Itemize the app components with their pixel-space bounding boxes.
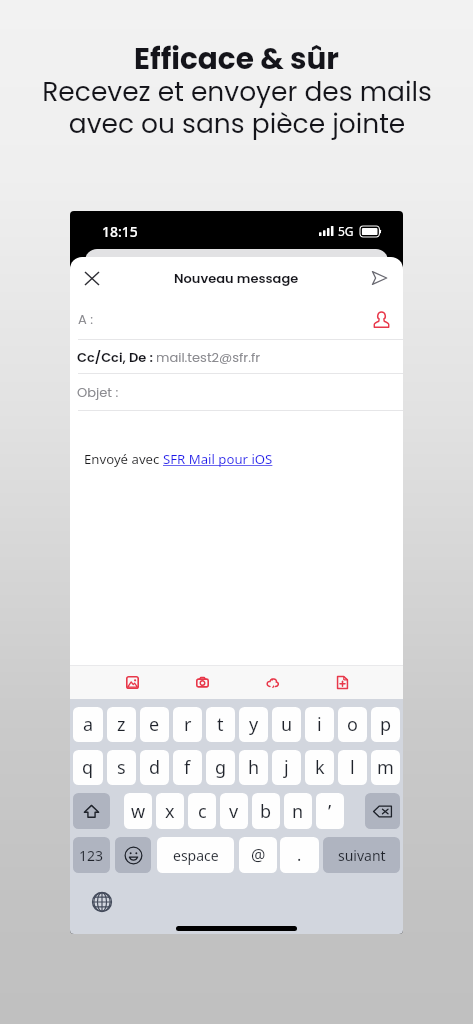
button[interactable]: e xyxy=(140,707,169,742)
staticText: a xyxy=(83,712,94,737)
button[interactable]: x xyxy=(156,793,184,829)
button[interactable]: espace xyxy=(157,837,234,873)
button[interactable]: i xyxy=(305,707,334,742)
staticText: o xyxy=(347,712,358,737)
button[interactable]: w xyxy=(124,793,152,829)
staticText: suivant xyxy=(338,846,386,865)
button[interactable]: Fichier xyxy=(307,666,377,699)
staticText: 123 xyxy=(79,846,104,865)
staticText: m xyxy=(377,755,394,780)
button[interactable]: q xyxy=(73,750,103,785)
staticText: z xyxy=(117,712,126,737)
staticText: u xyxy=(281,712,293,737)
staticText: 5G xyxy=(338,223,354,239)
staticText: x xyxy=(165,799,175,824)
staticText: Envoyé avec xyxy=(84,450,163,468)
staticText: 18:15 xyxy=(102,222,138,241)
button[interactable]: SFR Mail pour iOS xyxy=(163,450,273,468)
staticText: Nouveau message xyxy=(174,269,299,287)
button[interactable]: b xyxy=(252,793,280,829)
button[interactable]: s xyxy=(107,750,136,785)
button[interactable]: u xyxy=(272,707,301,742)
staticText: mail.test2@sfr.fr xyxy=(156,348,261,366)
staticText: Efficace & sûr xyxy=(134,38,339,79)
button[interactable]: a xyxy=(73,707,103,742)
button[interactable]: Emoji xyxy=(115,837,151,873)
button[interactable]: f xyxy=(173,750,202,785)
staticText: . xyxy=(297,844,302,866)
staticText: j xyxy=(284,755,289,780)
button[interactable]: m xyxy=(371,750,400,785)
button[interactable]: d xyxy=(140,750,169,785)
button[interactable]: t xyxy=(206,707,235,742)
staticText: i xyxy=(317,712,322,737)
button[interactable]: j xyxy=(272,750,301,785)
button[interactable]: z xyxy=(107,707,136,742)
button[interactable]: c xyxy=(188,793,216,829)
button[interactable]: ’ xyxy=(316,793,344,829)
staticText: p xyxy=(380,712,392,737)
staticText: h xyxy=(248,755,260,780)
button[interactable]: l xyxy=(338,750,367,785)
staticText: e xyxy=(149,712,160,737)
staticText: r xyxy=(184,712,192,737)
button[interactable]: Cloud xyxy=(237,666,307,699)
button[interactable]: Supprimer xyxy=(365,793,400,829)
button[interactable]: Majuscule xyxy=(73,793,110,829)
staticText: k xyxy=(315,755,325,780)
button[interactable]: r xyxy=(173,707,202,742)
staticText: b xyxy=(260,799,272,824)
staticText: g xyxy=(215,755,227,780)
staticText: espace xyxy=(173,846,219,865)
staticText: Objet : xyxy=(77,383,119,401)
button[interactable]: g xyxy=(206,750,235,785)
button[interactable]: k xyxy=(305,750,334,785)
staticText: d xyxy=(149,755,161,780)
button[interactable]: n xyxy=(284,793,312,829)
button[interactable]: 123 xyxy=(73,837,110,873)
button[interactable]: p xyxy=(371,707,400,742)
staticText: Recevez et envoyer des mails avec ou san… xyxy=(42,73,432,142)
staticText: q xyxy=(82,755,94,780)
staticText: Cc/Cci, De : xyxy=(77,348,156,366)
button[interactable]: Fermer xyxy=(77,263,107,293)
staticText: A : xyxy=(78,310,94,328)
staticText: y xyxy=(249,712,259,737)
button[interactable]: v xyxy=(220,793,248,829)
staticText: s xyxy=(117,755,126,780)
button[interactable]: y xyxy=(239,707,268,742)
staticText: w xyxy=(131,799,146,824)
button[interactable]: Image xyxy=(97,666,167,699)
button[interactable]: Langue xyxy=(88,888,116,916)
button[interactable]: Envoyer xyxy=(364,263,394,293)
button[interactable]: Appareil photo xyxy=(167,666,237,699)
staticText: v xyxy=(229,799,239,824)
button[interactable]: @ xyxy=(239,837,277,873)
staticText: @ xyxy=(251,844,266,866)
staticText: c xyxy=(198,799,207,824)
staticText: n xyxy=(292,799,304,824)
button[interactable]: Contacts xyxy=(368,306,394,332)
button[interactable]: o xyxy=(338,707,367,742)
button[interactable]: suivant xyxy=(323,837,400,873)
button[interactable]: . xyxy=(280,837,319,873)
staticText: l xyxy=(350,755,355,780)
staticText: ’ xyxy=(328,799,332,824)
staticText: t xyxy=(217,712,224,737)
staticText: f xyxy=(184,755,191,780)
button[interactable]: h xyxy=(239,750,268,785)
